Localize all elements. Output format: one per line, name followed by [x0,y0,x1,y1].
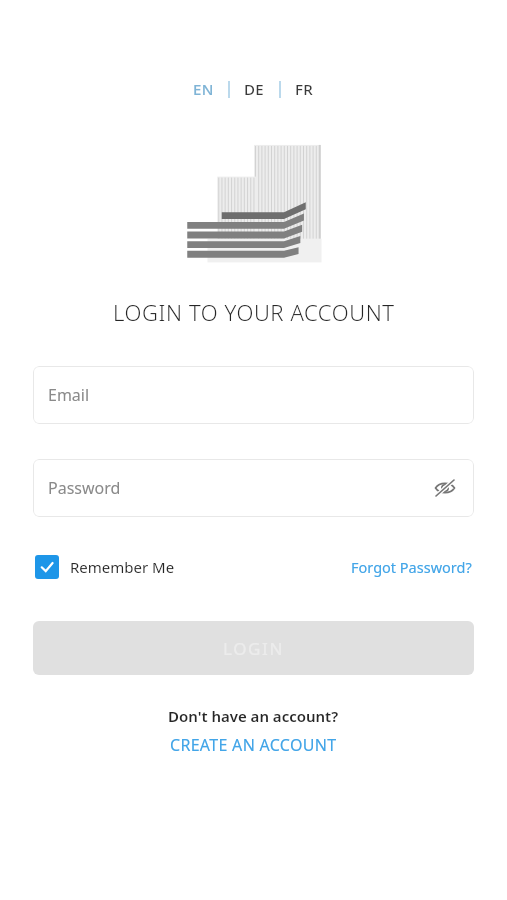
button[interactable]: CREATE AN ACCOUNT [164,732,343,758]
staticText: Remember Me [70,557,175,577]
button[interactable]: Email [33,366,474,424]
staticText: EN [193,79,214,99]
button[interactable]: DE [239,76,270,102]
staticText: LOGIN [223,637,284,660]
button[interactable]: FR [290,76,319,102]
staticText: LOGIN TO YOUR ACCOUNT [113,297,395,327]
staticText: CREATE AN ACCOUNT [170,734,337,756]
staticText: Email [48,384,90,406]
button[interactable]: EN [188,76,219,102]
staticText: Don't have an account? [168,706,339,726]
button[interactable]: Remember Me [33,551,177,583]
staticText: Forgot Password? [351,557,472,577]
staticText: Password [48,477,121,499]
button[interactable]: Forgot Password? [349,553,474,581]
staticText: FR [295,79,314,99]
button[interactable]: Show password [428,471,462,505]
staticText: DE [244,79,265,99]
button[interactable]: Password [33,459,474,517]
